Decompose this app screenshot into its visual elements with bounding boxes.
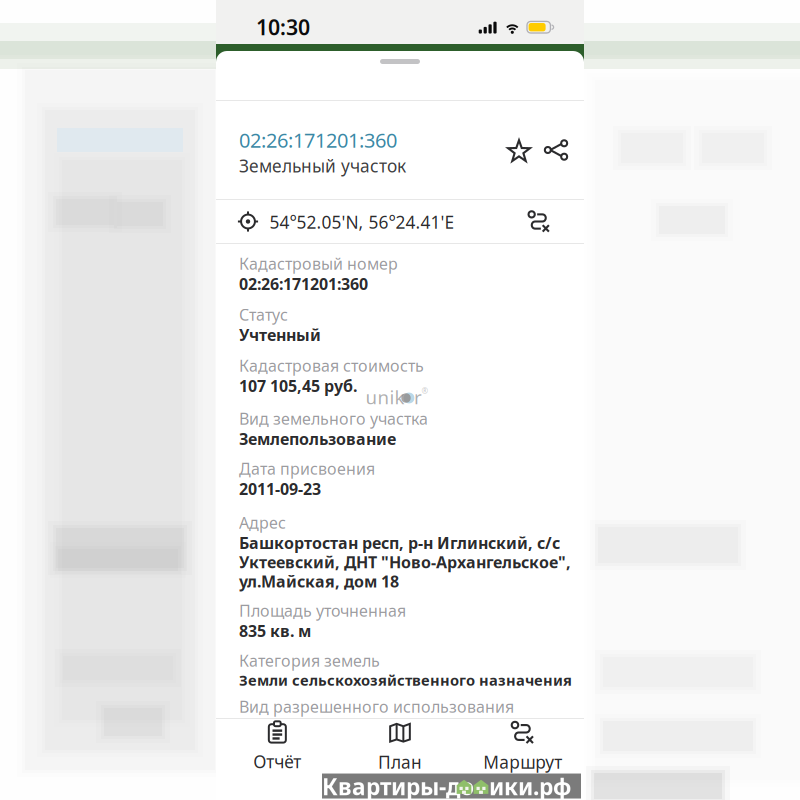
staticText: Земли сельскохозяйственного назначения xyxy=(239,670,572,690)
staticText: Квартиры-до xyxy=(322,771,474,800)
button[interactable]: 54°52.05'N, 56°24.41'E xyxy=(216,200,584,243)
staticText: 835 кв. м xyxy=(239,620,311,641)
staticText: Категория земель xyxy=(239,650,380,671)
button[interactable]: План xyxy=(339,721,461,773)
staticText: Уктеевский, ДНТ "Ново-Архангельское", xyxy=(239,551,571,573)
staticText: Статус xyxy=(239,304,288,325)
staticText: 107 105,45 руб. xyxy=(239,375,357,396)
staticText: Башкортостан респ, р-н Иглинский, с/с xyxy=(239,532,560,553)
staticText: Отчёт xyxy=(253,750,301,773)
button[interactable]: Добавить в избранное xyxy=(498,130,540,172)
button[interactable]: Отчёт xyxy=(216,721,339,773)
staticText: r xyxy=(414,385,422,409)
staticText: План xyxy=(378,750,422,773)
staticText: 2011-09-23 xyxy=(239,478,321,499)
staticText: Учтенный xyxy=(239,324,321,345)
staticText: Площадь уточненная xyxy=(239,600,406,621)
staticText: 54°52.05'N, 56°24.41'E xyxy=(269,210,454,233)
staticText: Кадастровая стоимость xyxy=(239,355,424,376)
staticText: Земельный участок xyxy=(239,154,406,177)
staticText: Маршрут xyxy=(483,750,562,773)
staticText: unik xyxy=(365,385,404,409)
staticText: Землепользование xyxy=(239,428,396,449)
staticText: 10:30 xyxy=(256,13,310,41)
staticText: 02:26:171201:360 xyxy=(239,273,368,294)
staticText: ул.Майская, дом 18 xyxy=(239,571,399,592)
staticText: 02:26:171201:360 xyxy=(239,127,397,153)
button[interactable]: Поделиться xyxy=(535,129,577,171)
staticText: Для ведения садоводства xyxy=(239,716,453,737)
staticText: Вид земельного участка xyxy=(239,408,428,429)
staticText: ® xyxy=(421,386,428,396)
button[interactable]: Маршрут xyxy=(461,721,584,773)
staticText: Вид разрешенного использования xyxy=(239,696,514,717)
staticText: Кадастровый номер xyxy=(239,253,398,274)
staticText: Дата присвоения xyxy=(239,458,375,479)
staticText: Адрес xyxy=(239,512,286,533)
staticText: ики.рф xyxy=(489,771,571,800)
